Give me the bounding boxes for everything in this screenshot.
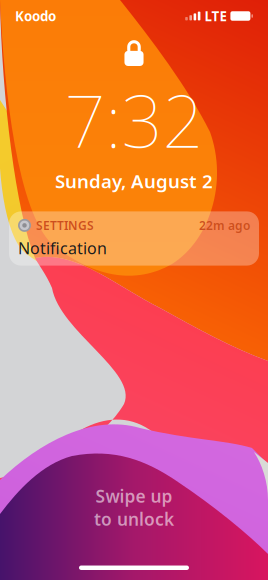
button[interactable]: SETTINGS xyxy=(9,211,259,266)
staticText: 22m ago xyxy=(199,217,250,233)
staticText: LTE xyxy=(204,7,226,25)
staticText: 7:32 xyxy=(64,72,203,168)
staticText: Swipe up xyxy=(95,484,172,507)
staticText: SETTINGS xyxy=(36,217,94,233)
staticText: to unlock xyxy=(94,507,174,530)
staticText: Notification xyxy=(18,237,107,258)
staticText: Koodo xyxy=(15,7,56,25)
staticText: Sunday, August 2 xyxy=(55,169,213,193)
